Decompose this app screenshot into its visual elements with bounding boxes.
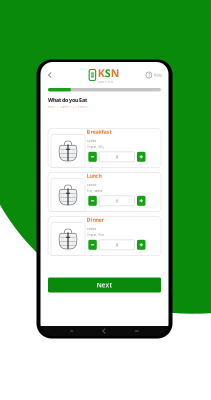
staticText: LUNCH BOX — [98, 80, 114, 84]
staticText: 0 — [116, 198, 118, 203]
staticText: ₹3500 — [86, 183, 96, 186]
staticText: ₹5000 — [86, 227, 96, 230]
staticText: K — [98, 66, 105, 80]
staticText: Lunch — [86, 172, 101, 179]
staticText: Note: 1 Carrier = 2 Persons — [48, 105, 87, 108]
staticText: Chapati, Idly — [86, 145, 103, 149]
staticText: Dinner — [86, 216, 103, 223]
button[interactable]: Decrease — [88, 196, 97, 206]
staticText: Next — [96, 281, 112, 289]
staticText: N — [111, 66, 120, 80]
staticText: S — [105, 66, 111, 80]
button[interactable]: Increase — [137, 240, 145, 250]
staticText: Chapati, Rice — [86, 233, 104, 237]
button[interactable]: Increase — [137, 152, 145, 162]
button[interactable]: Increase — [137, 196, 145, 206]
staticText: 0 — [116, 242, 118, 247]
button[interactable]: ? — [143, 67, 164, 83]
staticText: Rice, sambar — [86, 189, 102, 193]
staticText: 0 — [116, 154, 118, 159]
staticText: Breakfast — [86, 128, 111, 135]
staticText: Help — [153, 72, 161, 78]
button[interactable]: Next — [48, 277, 161, 292]
staticText: ? — [148, 71, 150, 79]
staticText: What do you Eat — [48, 96, 87, 103]
button[interactable]: Back — [44, 66, 55, 83]
button[interactable]: Decrease — [88, 152, 97, 162]
button[interactable]: Decrease — [88, 240, 97, 250]
staticText: ₹2500 — [86, 139, 96, 142]
